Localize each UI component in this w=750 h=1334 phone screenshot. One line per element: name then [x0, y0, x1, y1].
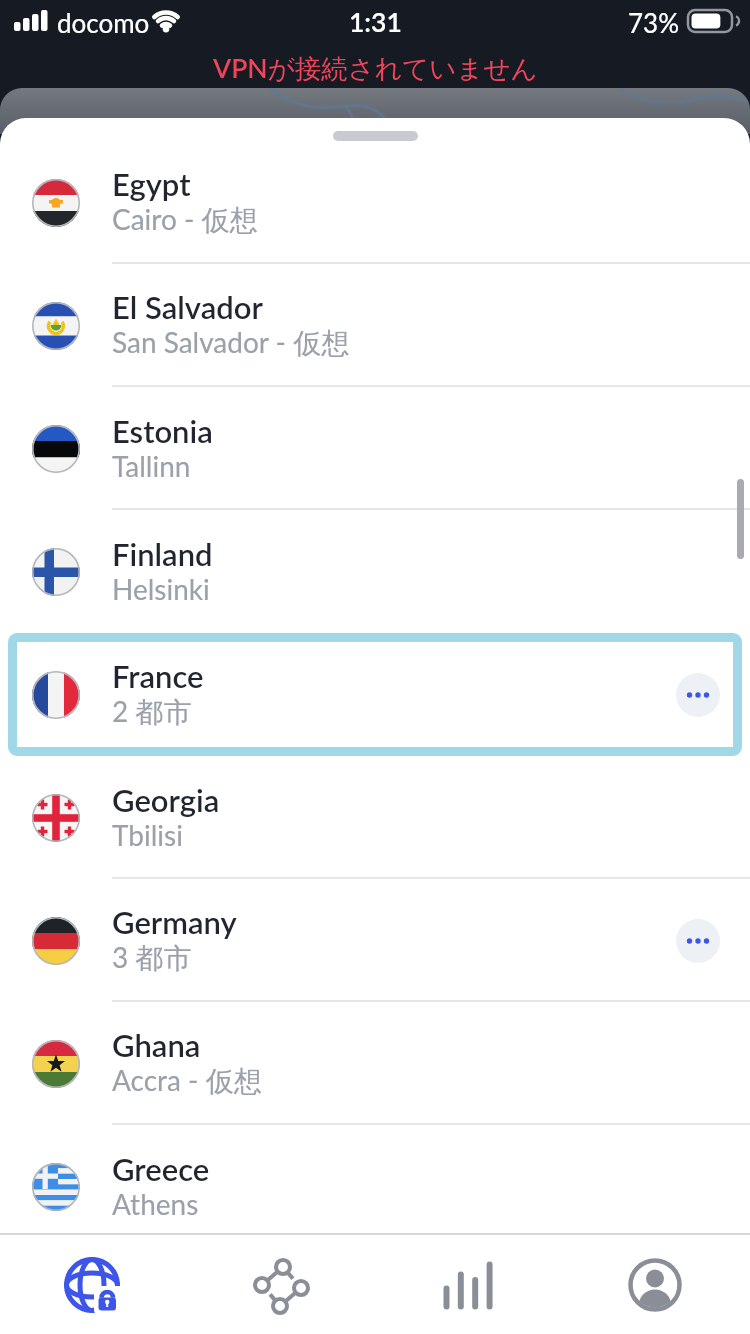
button[interactable] — [374, 1235, 561, 1334]
staticText: Cairo - 仮想 — [112, 202, 258, 238]
button[interactable]: Germany — [0, 879, 750, 1002]
button[interactable] — [187, 1235, 374, 1334]
staticText: 1:31 — [349, 6, 402, 38]
staticText: San Salvador - 仮想 — [112, 325, 350, 361]
button[interactable]: Estonia — [0, 387, 750, 510]
staticText: Germany — [112, 903, 237, 940]
staticText: Greece — [112, 1150, 210, 1187]
staticText: El Salvador — [112, 288, 263, 325]
staticText: Athens — [112, 1187, 199, 1221]
button[interactable] — [676, 919, 720, 963]
staticText: Finland — [112, 535, 213, 572]
staticText: Tallinn — [112, 449, 191, 483]
staticText: France — [112, 657, 204, 694]
staticText: VPNが接続されていません — [213, 52, 538, 86]
staticText: 73% — [628, 7, 679, 38]
staticText: Accra - 仮想 — [112, 1063, 262, 1099]
staticText: Estonia — [112, 412, 213, 449]
staticText: Georgia — [112, 781, 220, 818]
button[interactable]: El Salvador — [0, 264, 750, 387]
button[interactable]: Finland — [0, 510, 750, 633]
staticText: Egypt — [112, 165, 191, 202]
button[interactable]: Ghana — [0, 1002, 750, 1125]
button[interactable] — [676, 673, 720, 717]
staticText: 3 都市 — [112, 940, 192, 976]
staticText: Ghana — [112, 1026, 201, 1063]
staticText: Tbilisi — [112, 818, 183, 852]
button[interactable]: Egypt — [0, 141, 750, 264]
button[interactable]: Georgia — [0, 756, 750, 879]
button[interactable] — [0, 1235, 187, 1334]
button[interactable]: Greece — [0, 1125, 750, 1248]
staticText: Helsinki — [112, 572, 210, 606]
staticText: docomo — [57, 7, 150, 38]
staticText: 2 都市 — [112, 694, 192, 730]
button[interactable] — [561, 1235, 748, 1334]
button[interactable]: France — [0, 633, 750, 756]
